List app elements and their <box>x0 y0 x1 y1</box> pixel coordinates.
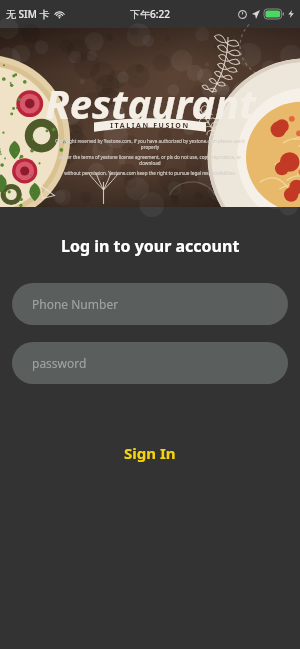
button[interactable]: Phone Number <box>12 283 288 325</box>
staticText: password <box>32 355 87 371</box>
staticText: Restaurant <box>45 76 256 130</box>
staticText: without permission. Yestone.com keep the… <box>64 170 236 176</box>
staticText: 无 SIM 卡 <box>6 7 50 21</box>
staticText: Phone Number <box>32 296 119 312</box>
staticText: 下午6:22 <box>130 7 170 21</box>
staticText: Copyright reserved by Yestone.com, if yo… <box>50 138 250 150</box>
staticText: under the terms of yestone license agree… <box>50 154 250 166</box>
button[interactable]: password <box>12 342 288 384</box>
staticText: Sign In <box>124 443 176 463</box>
staticText: ITALIAN FUSION <box>94 121 206 131</box>
staticText: Log in to your account <box>61 235 240 257</box>
button[interactable]: Sign In <box>0 432 300 474</box>
